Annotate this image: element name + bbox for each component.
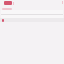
button[interactable]: Header (4, 1, 12, 5)
button[interactable]: Subtitle (2, 8, 12, 10)
button[interactable]: Home (2, 19, 4, 22)
